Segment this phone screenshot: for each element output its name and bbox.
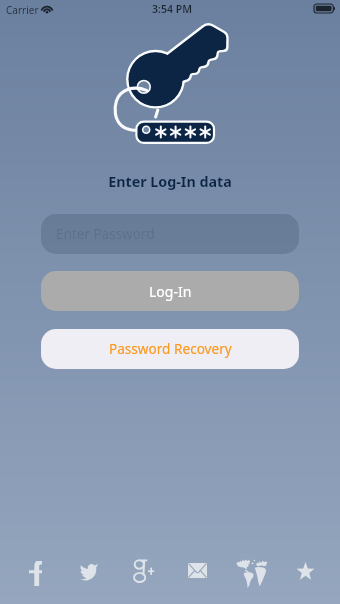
button[interactable]: Log-In xyxy=(41,271,299,311)
button[interactable]: Email xyxy=(180,554,214,588)
button[interactable]: Google Plus xyxy=(126,554,160,588)
staticText: Enter Log-In data xyxy=(0,172,340,191)
button[interactable]: Web xyxy=(234,554,268,588)
staticText: Carrier xyxy=(6,3,39,17)
button[interactable]: Password Recovery xyxy=(41,329,299,369)
button[interactable]: Facebook xyxy=(18,554,52,588)
staticText: Enter Password xyxy=(56,225,155,243)
staticText: Password Recovery xyxy=(109,339,232,358)
button[interactable]: Twitter xyxy=(72,554,106,588)
button[interactable]: Enter Password xyxy=(41,214,299,254)
staticText: Log-In xyxy=(149,282,192,301)
staticText: 3:54 PM xyxy=(2,2,340,16)
button[interactable]: Favorites xyxy=(288,554,322,588)
